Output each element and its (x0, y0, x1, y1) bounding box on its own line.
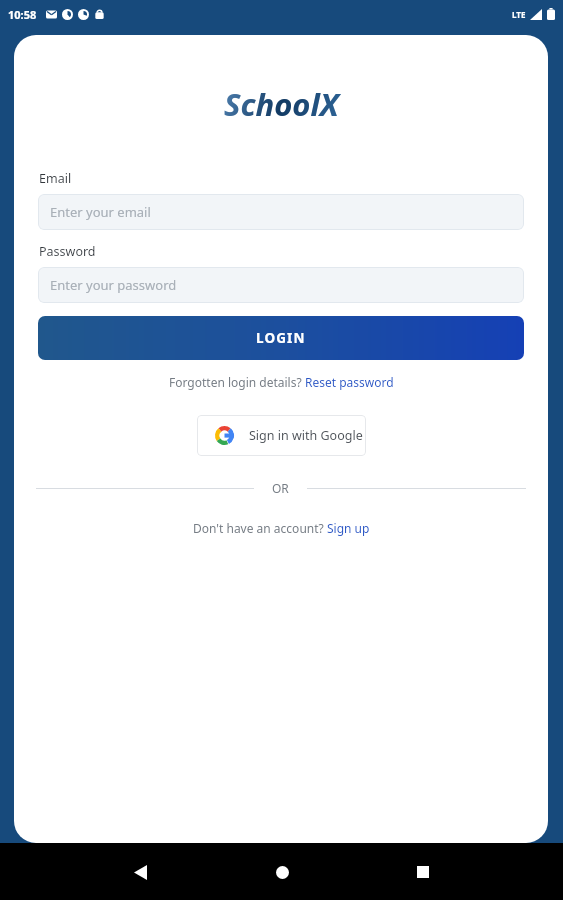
button[interactable]: Reset password (305, 374, 394, 390)
button[interactable]: Sign up (327, 520, 370, 536)
staticText: Don't have an account? (193, 520, 327, 536)
button[interactable]: Recent apps (403, 852, 443, 892)
staticText: LTE (512, 9, 526, 20)
staticText: Enter your email (50, 203, 151, 221)
staticText: SchoolX (224, 83, 339, 125)
staticText: LOGIN (256, 329, 306, 347)
staticText: Email (39, 170, 72, 187)
staticText: Sign in with Google (249, 427, 363, 444)
button[interactable]: Sign in with Google (197, 415, 366, 456)
staticText: OR (272, 480, 289, 496)
staticText: Reset password (305, 374, 394, 390)
button[interactable]: Enter your password (38, 267, 524, 303)
staticText: Enter your password (50, 276, 177, 294)
staticText: 10:58 (8, 7, 37, 22)
button[interactable]: Home (262, 852, 302, 892)
button[interactable]: Back (120, 852, 160, 892)
button[interactable]: Enter your email (38, 194, 524, 230)
button[interactable]: LOGIN (38, 316, 524, 360)
staticText: Password (39, 243, 96, 260)
staticText: Sign up (327, 520, 370, 536)
staticText: Forgotten login details? (169, 374, 305, 390)
